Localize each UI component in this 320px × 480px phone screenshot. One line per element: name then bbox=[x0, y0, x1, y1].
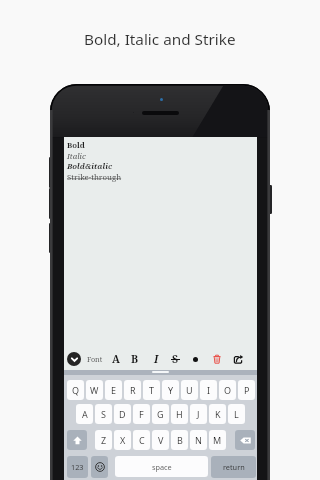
button[interactable]: X bbox=[114, 430, 131, 450]
button[interactable]: Collapse font panel bbox=[66, 351, 82, 367]
button[interactable]: W bbox=[86, 380, 103, 400]
button[interactable]: J bbox=[190, 404, 207, 424]
button[interactable]: Y bbox=[162, 380, 179, 400]
button[interactable]: I bbox=[200, 380, 217, 400]
staticText: N bbox=[195, 434, 202, 446]
button[interactable]: 123 bbox=[67, 456, 88, 478]
staticText: O bbox=[224, 384, 232, 396]
staticText: C bbox=[139, 434, 145, 446]
staticText: B bbox=[131, 352, 139, 366]
button[interactable]: Italic bbox=[148, 351, 164, 367]
button[interactable]: Bold bbox=[127, 351, 143, 367]
staticText: R bbox=[130, 384, 136, 396]
button[interactable]: S bbox=[95, 404, 112, 424]
staticText: Bold, Italic and Strike bbox=[84, 29, 236, 49]
button[interactable]: E bbox=[105, 380, 122, 400]
staticText: V bbox=[158, 434, 164, 446]
staticText: L bbox=[234, 408, 239, 420]
staticText: W bbox=[90, 384, 99, 396]
staticText: T bbox=[149, 384, 155, 396]
button[interactable]: V bbox=[152, 430, 169, 450]
staticText: X bbox=[120, 434, 126, 446]
button[interactable]: F bbox=[133, 404, 150, 424]
button[interactable]: return bbox=[211, 456, 256, 478]
button[interactable]: N bbox=[190, 430, 207, 450]
button[interactable]: H bbox=[171, 404, 188, 424]
staticText: P bbox=[244, 384, 250, 396]
button[interactable]: B bbox=[171, 430, 188, 450]
staticText: B bbox=[177, 434, 183, 446]
staticText: space bbox=[152, 462, 172, 472]
staticText: J bbox=[197, 408, 200, 420]
staticText: Font bbox=[87, 354, 103, 364]
button[interactable]: Emoji bbox=[91, 456, 108, 478]
button[interactable]: space bbox=[115, 456, 208, 477]
button[interactable]: Delete bbox=[209, 351, 225, 367]
button[interactable]: L bbox=[228, 404, 245, 424]
staticText: Bold bbox=[67, 140, 85, 151]
staticText: S bbox=[101, 408, 106, 420]
staticText: U bbox=[186, 384, 193, 396]
button[interactable]: T bbox=[143, 380, 160, 400]
staticText: A bbox=[82, 408, 88, 420]
staticText: F bbox=[139, 408, 144, 420]
button[interactable]: Z bbox=[95, 430, 112, 450]
staticText: Z bbox=[101, 434, 107, 446]
button[interactable]: K bbox=[209, 404, 226, 424]
button[interactable]: Strikethrough bbox=[167, 351, 183, 367]
staticText: return bbox=[223, 462, 245, 472]
button[interactable]: Shift bbox=[67, 430, 87, 450]
button[interactable]: Bullet list bbox=[187, 351, 203, 367]
staticText: D bbox=[119, 408, 126, 420]
staticText: Q bbox=[72, 384, 80, 396]
button[interactable]: R bbox=[124, 380, 141, 400]
staticText: Italic bbox=[67, 151, 86, 162]
staticText: K bbox=[215, 408, 221, 420]
staticText: S bbox=[172, 352, 179, 366]
staticText: H bbox=[176, 408, 183, 420]
button[interactable]: C bbox=[133, 430, 150, 450]
button[interactable]: Font size bbox=[108, 351, 124, 367]
staticText: E bbox=[111, 384, 117, 396]
button[interactable]: O bbox=[219, 380, 236, 400]
button[interactable]: A bbox=[76, 404, 93, 424]
staticText: M bbox=[213, 434, 222, 446]
staticText: 123 bbox=[71, 462, 84, 472]
button[interactable]: G bbox=[152, 404, 169, 424]
staticText: G bbox=[157, 408, 164, 420]
button[interactable]: Font bbox=[84, 348, 106, 370]
button[interactable]: Q bbox=[67, 380, 84, 400]
staticText: Strike-through bbox=[67, 172, 122, 183]
button[interactable]: U bbox=[181, 380, 198, 400]
staticText: I bbox=[207, 384, 211, 396]
button[interactable]: P bbox=[238, 380, 255, 400]
button[interactable]: Share bbox=[230, 351, 246, 367]
staticText: A bbox=[112, 352, 120, 366]
button[interactable]: D bbox=[114, 404, 131, 424]
button[interactable]: M bbox=[209, 430, 226, 450]
button[interactable]: Backspace bbox=[235, 430, 255, 450]
staticText: I bbox=[154, 352, 159, 366]
staticText: Bold&italic bbox=[67, 161, 113, 172]
staticText: Y bbox=[168, 384, 174, 396]
